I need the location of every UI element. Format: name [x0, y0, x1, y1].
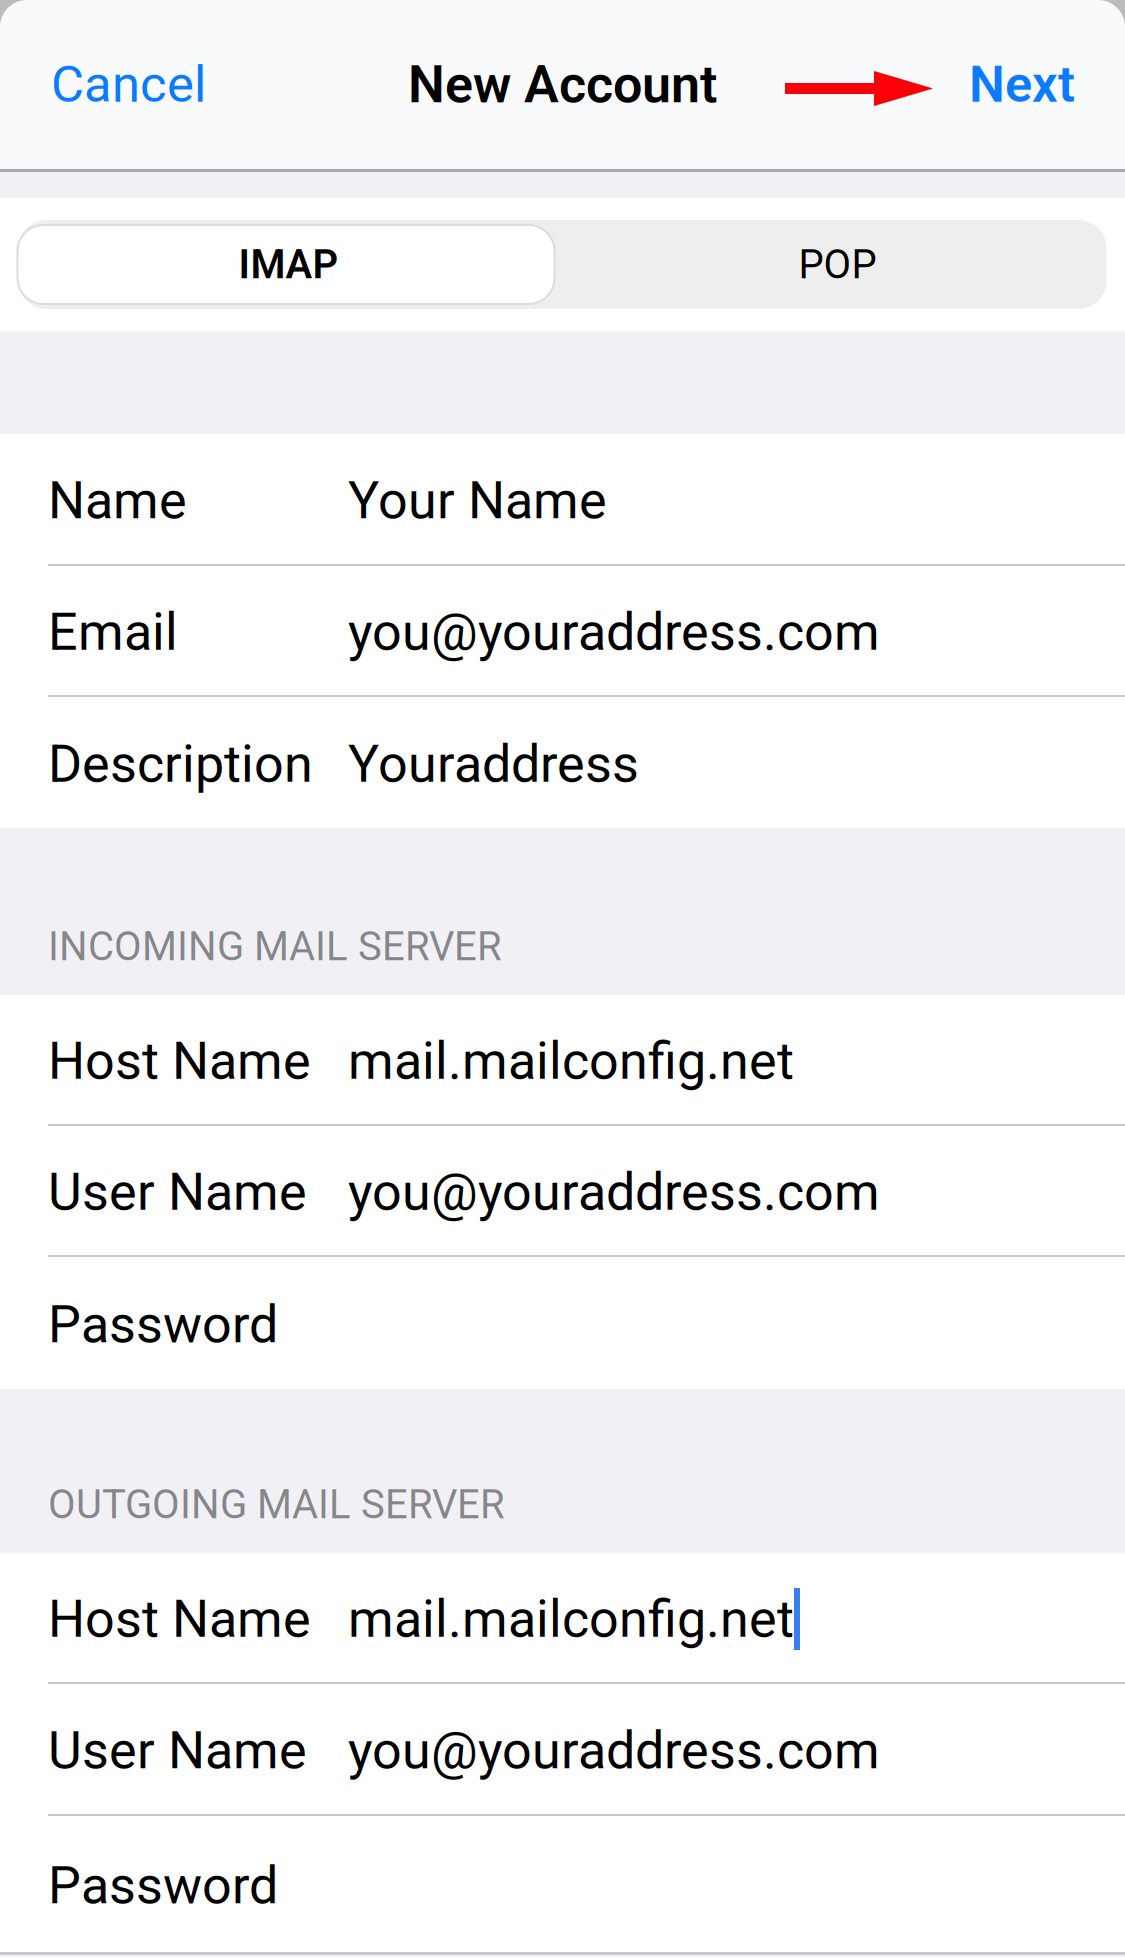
staticText: Youraddress: [348, 733, 639, 794]
button[interactable]: Host Name: [0, 995, 1125, 1124]
button[interactable]: Password: [0, 1257, 1125, 1389]
button[interactable]: Description: [0, 697, 1125, 828]
button[interactable]: Email: [0, 566, 1125, 695]
staticText: Description: [48, 733, 313, 794]
staticText: Password: [48, 1855, 278, 1916]
staticText: New Account: [408, 54, 717, 115]
staticText: you@youraddress.com: [348, 1720, 880, 1781]
staticText: you@youraddress.com: [348, 1161, 880, 1222]
button[interactable]: User Name: [0, 1684, 1125, 1814]
button[interactable]: Host Name: [0, 1553, 1125, 1682]
staticText: Cancel: [51, 55, 206, 114]
staticText: Next: [969, 55, 1075, 114]
staticText: mail.mailconfig.net: [348, 1588, 794, 1649]
staticText: INCOMING MAIL SERVER: [48, 923, 502, 970]
staticText: Host Name: [48, 1588, 311, 1649]
button[interactable]: Password: [0, 1816, 1125, 1952]
staticText: User Name: [48, 1161, 307, 1222]
button[interactable]: Cancel: [0, 0, 240, 169]
button[interactable]: Name: [0, 434, 1125, 564]
button[interactable]: User Name: [0, 1126, 1125, 1255]
staticText: mail.mailconfig.net: [348, 1030, 794, 1091]
staticText: Name: [48, 470, 187, 531]
button[interactable]: IMAP: [18, 220, 553, 309]
staticText: User Name: [48, 1720, 307, 1781]
staticText: Your Name: [348, 470, 607, 531]
staticText: you@youraddress.com: [348, 601, 880, 662]
staticText: Password: [48, 1294, 278, 1355]
staticText: Host Name: [48, 1030, 311, 1091]
button[interactable]: Next: [933, 0, 1125, 169]
button[interactable]: POP: [553, 220, 1106, 309]
staticText: IMAP: [238, 241, 338, 288]
staticText: OUTGOING MAIL SERVER: [48, 1481, 505, 1528]
staticText: Email: [48, 601, 178, 662]
staticText: POP: [798, 241, 876, 288]
